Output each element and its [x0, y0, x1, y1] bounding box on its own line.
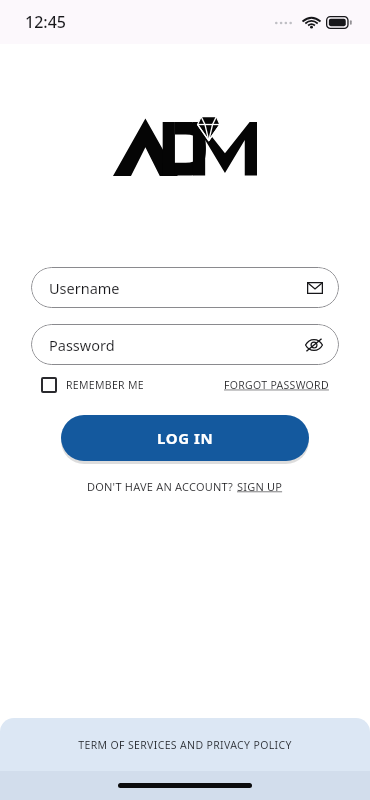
- staticText: REMEMBER ME: [66, 378, 144, 392]
- staticText: TERM OF SERVICES AND PRIVACY POLICY: [78, 738, 292, 752]
- staticText: 12:45: [25, 11, 66, 33]
- button[interactable]: REMEMBER ME: [41, 377, 144, 393]
- button[interactable]: LOG IN: [61, 415, 309, 461]
- button[interactable]: Password: [31, 324, 339, 365]
- staticText: LOG IN: [157, 428, 214, 448]
- staticText: Username: [49, 278, 307, 298]
- button[interactable]: FORGOT PASSWORD: [224, 378, 329, 392]
- button[interactable]: SIGN UP: [237, 479, 283, 494]
- staticText: Password: [49, 335, 305, 355]
- staticText: DON'T HAVE AN ACCOUNT?: [87, 479, 237, 494]
- staticText: SIGN UP: [237, 479, 283, 494]
- button[interactable]: TERM OF SERVICES AND PRIVACY POLICY: [0, 718, 370, 771]
- button[interactable]: Username: [31, 267, 339, 308]
- staticText: FORGOT PASSWORD: [224, 378, 329, 392]
